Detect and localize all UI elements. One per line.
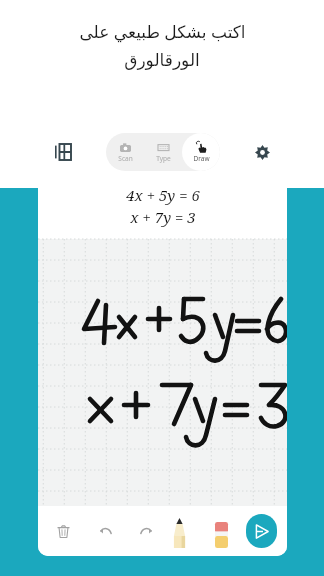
staticText: Draw	[193, 154, 210, 163]
button[interactable]: Pencil	[162, 514, 196, 548]
button[interactable]: Scan	[106, 133, 144, 171]
button[interactable]: Settings	[245, 135, 279, 169]
button[interactable]: Redo	[132, 516, 162, 546]
staticText: الورقالورق	[124, 50, 200, 70]
button[interactable]: Undo	[90, 516, 120, 546]
button[interactable]: Draw	[182, 133, 220, 171]
staticText: x + 7y = 3	[130, 207, 196, 227]
button[interactable]: Type	[144, 133, 182, 171]
staticText: Type	[156, 154, 171, 163]
staticText: اكتب بشكل طبيعي على	[79, 20, 246, 43]
button[interactable]: Eraser	[204, 514, 238, 548]
staticText: Scan	[118, 154, 133, 163]
button[interactable]: Solve	[246, 514, 277, 548]
button[interactable]: History	[46, 135, 80, 169]
staticText: 4x + 5y = 6	[126, 185, 200, 205]
button[interactable]: Delete	[48, 516, 78, 546]
